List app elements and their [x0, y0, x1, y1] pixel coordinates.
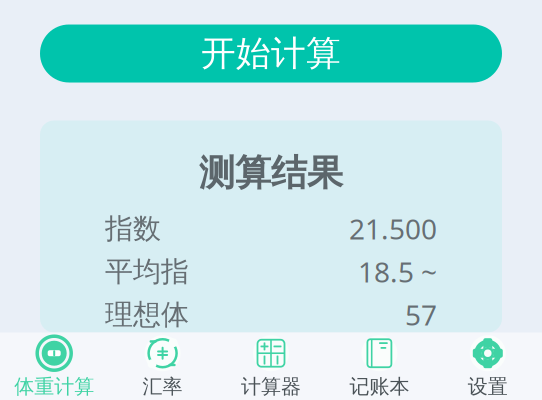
button[interactable]: 汇率 — [108, 332, 217, 400]
staticText: 21.500 — [349, 210, 437, 247]
staticText: 平均指 — [105, 254, 189, 289]
button[interactable]: 体重计算 — [0, 332, 108, 400]
staticText: 设置 — [468, 374, 508, 399]
staticText: 18.5 ~ — [358, 253, 437, 290]
staticText: 开始计算 — [201, 32, 341, 75]
staticText: 57 — [405, 296, 437, 333]
staticText: 体重计算 — [14, 374, 94, 399]
staticText: 指数 — [105, 211, 161, 246]
staticText: 记账本 — [349, 374, 409, 399]
staticText: 汇率 — [143, 374, 183, 399]
button[interactable]: 记账本 — [325, 332, 434, 400]
staticText: 测算结果 — [199, 151, 343, 195]
staticText: 理想体 — [105, 297, 189, 332]
staticText: 计算器 — [241, 374, 301, 399]
button[interactable]: 开始计算 — [40, 24, 502, 82]
button[interactable]: 计算器 — [217, 332, 325, 400]
button[interactable]: 设置 — [434, 332, 542, 400]
